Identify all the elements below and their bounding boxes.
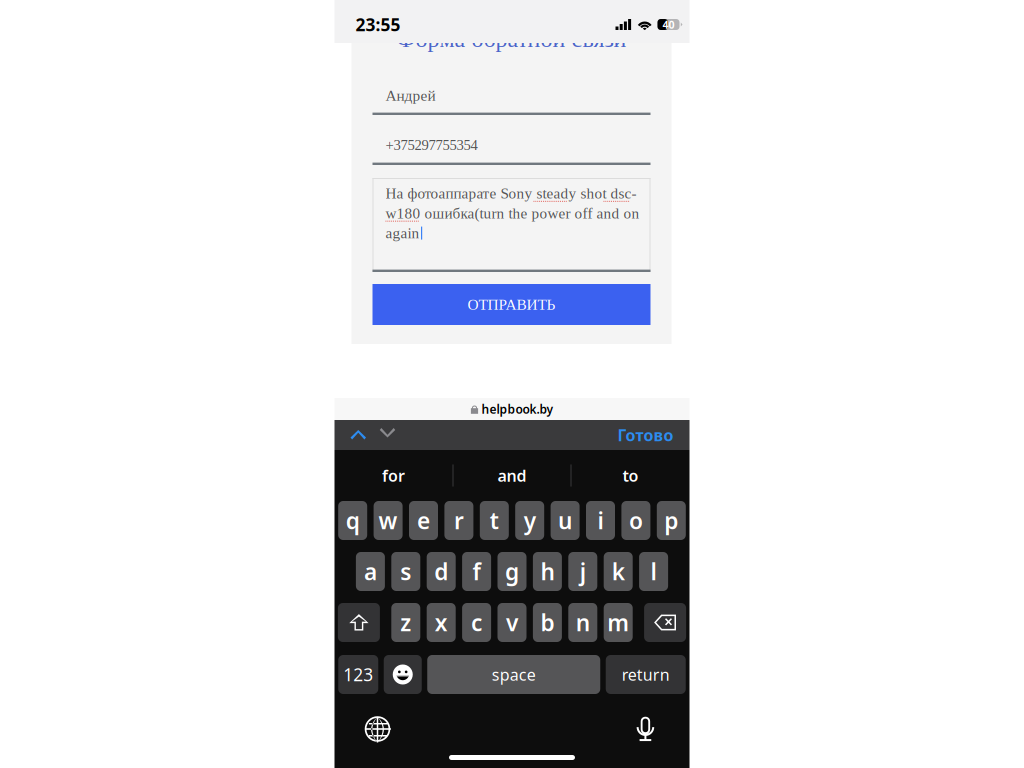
staticText: t [490,505,499,535]
button[interactable]: space [427,655,600,694]
button[interactable]: Previous field [334,420,374,450]
button[interactable]: Emoji [384,655,422,694]
button[interactable]: return [606,655,686,694]
staticText: n [576,607,590,637]
staticText: ОТПРАВИТЬ [467,296,555,313]
button[interactable]: t [480,501,509,540]
button[interactable]: a [356,552,385,591]
staticText: f [473,556,481,586]
button[interactable]: Next keyboard [355,712,399,746]
button[interactable]: v [497,603,526,642]
staticText: l [651,556,657,586]
staticText: Форма обратной связи [396,26,626,52]
staticText: y [524,505,536,535]
staticText: x [435,607,448,637]
staticText: Андрей [385,87,435,104]
staticText: return [622,664,670,685]
button[interactable]: helpbook.by [334,398,689,420]
staticText: i [597,505,603,535]
button[interactable]: b [533,603,562,642]
button[interactable]: h [533,552,562,591]
staticText: u [558,505,572,535]
staticText: k [612,556,625,586]
button[interactable]: o [621,501,650,540]
button[interactable]: l [639,552,668,591]
button[interactable]: Delete [644,603,686,642]
staticText: w180 ошибка(turn the power off and on [385,205,639,222]
staticText: 23:55 [355,13,400,36]
button[interactable]: to [571,450,689,501]
staticText: space [492,664,536,685]
button[interactable]: s [391,552,420,591]
button[interactable]: d [427,552,456,591]
staticText: b [540,607,554,637]
button[interactable]: n [568,603,597,642]
staticText: and [497,465,526,486]
staticText: q [346,505,360,535]
button[interactable]: r [444,501,473,540]
staticText: to [622,465,638,486]
staticText: c [471,607,482,637]
button[interactable]: z [391,603,420,642]
button[interactable]: x [427,603,456,642]
staticText: w [379,505,398,535]
button[interactable]: g [497,552,526,591]
button[interactable]: y [515,501,544,540]
button[interactable]: u [551,501,580,540]
button[interactable]: Next field [374,420,401,450]
staticText: again [385,225,419,241]
staticText: +375297755354 [385,137,477,153]
staticText: a [364,556,377,586]
button[interactable]: j [568,552,597,591]
staticText: v [506,607,518,637]
staticText: helpbook.by [481,401,553,417]
staticText: for [382,465,405,486]
staticText: r [454,505,464,535]
button[interactable]: q [338,501,367,540]
staticText: j [580,556,586,586]
button[interactable]: k [604,552,633,591]
staticText: e [417,505,430,535]
staticText: m [607,607,629,637]
staticText: s [400,556,411,586]
staticText: d [434,556,448,586]
button[interactable]: Готово [617,420,689,450]
button[interactable]: for [334,450,452,501]
staticText: h [540,556,554,586]
staticText: 123 [343,663,373,686]
staticText: 40 [662,17,674,32]
staticText: o [629,505,643,535]
staticText: p [664,505,678,535]
button[interactable]: p [657,501,686,540]
button[interactable]: i [586,501,615,540]
staticText: На фотоаппарате Sony steady shot dsc- [385,185,636,202]
button[interactable]: c [462,603,491,642]
button[interactable]: ОТПРАВИТЬ [372,284,650,325]
button[interactable]: f [462,552,491,591]
button[interactable]: 123 [338,655,378,694]
button[interactable]: e [409,501,438,540]
staticText: z [400,607,411,637]
staticText: g [505,556,519,586]
button[interactable]: Shift [338,603,380,642]
button[interactable]: w [374,501,403,540]
staticText: Готово [617,424,673,446]
button[interactable]: Dictate [623,712,667,746]
button[interactable]: and [453,450,570,501]
button[interactable]: m [604,603,633,642]
